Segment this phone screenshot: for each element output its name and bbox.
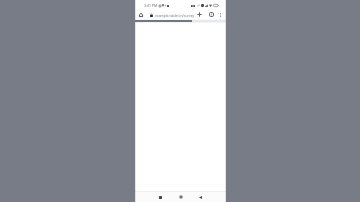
button[interactable]: New tab <box>195 10 204 19</box>
button[interactable]: example.tablet.in/survey <box>147 11 203 19</box>
staticText: 3:41 PM <box>144 3 158 8</box>
button[interactable]: Back <box>195 192 205 202</box>
button[interactable]: Home <box>136 10 145 19</box>
staticText: example.tablet.in/survey <box>155 13 195 18</box>
button[interactable]: Home <box>176 192 186 202</box>
button[interactable]: Recent apps <box>155 192 165 202</box>
button[interactable]: More options <box>216 11 224 19</box>
button[interactable]: Switch tabs <box>207 10 216 19</box>
